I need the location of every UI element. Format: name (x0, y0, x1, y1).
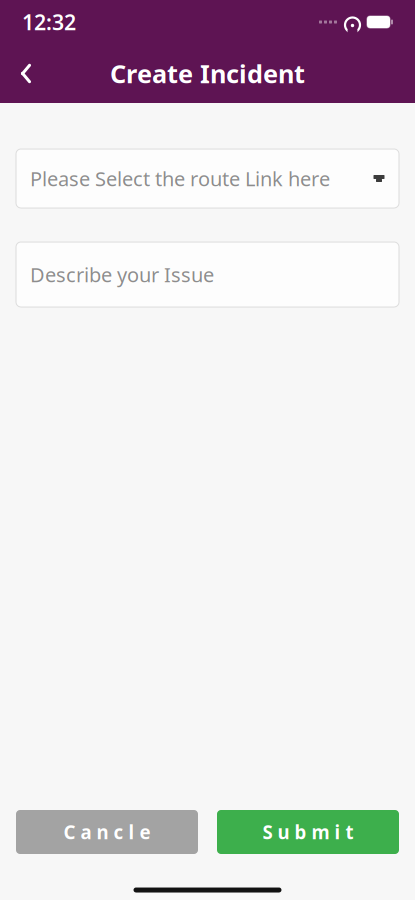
button[interactable]: Please Select the route Link here (16, 149, 399, 208)
button[interactable]: S u b m i t (217, 810, 399, 854)
button[interactable]: C a n c l e (16, 810, 198, 854)
staticText: Please Select the route Link here (30, 165, 330, 192)
staticText: S u b m i t (262, 820, 353, 844)
staticText: Describe your Issue (30, 261, 214, 288)
staticText: 12:32 (22, 8, 76, 36)
button[interactable]: Back (0, 49, 52, 97)
button[interactable]: Describe your Issue (16, 242, 399, 307)
staticText: C a n c l e (63, 820, 150, 844)
staticText: Create Incident (110, 57, 305, 90)
